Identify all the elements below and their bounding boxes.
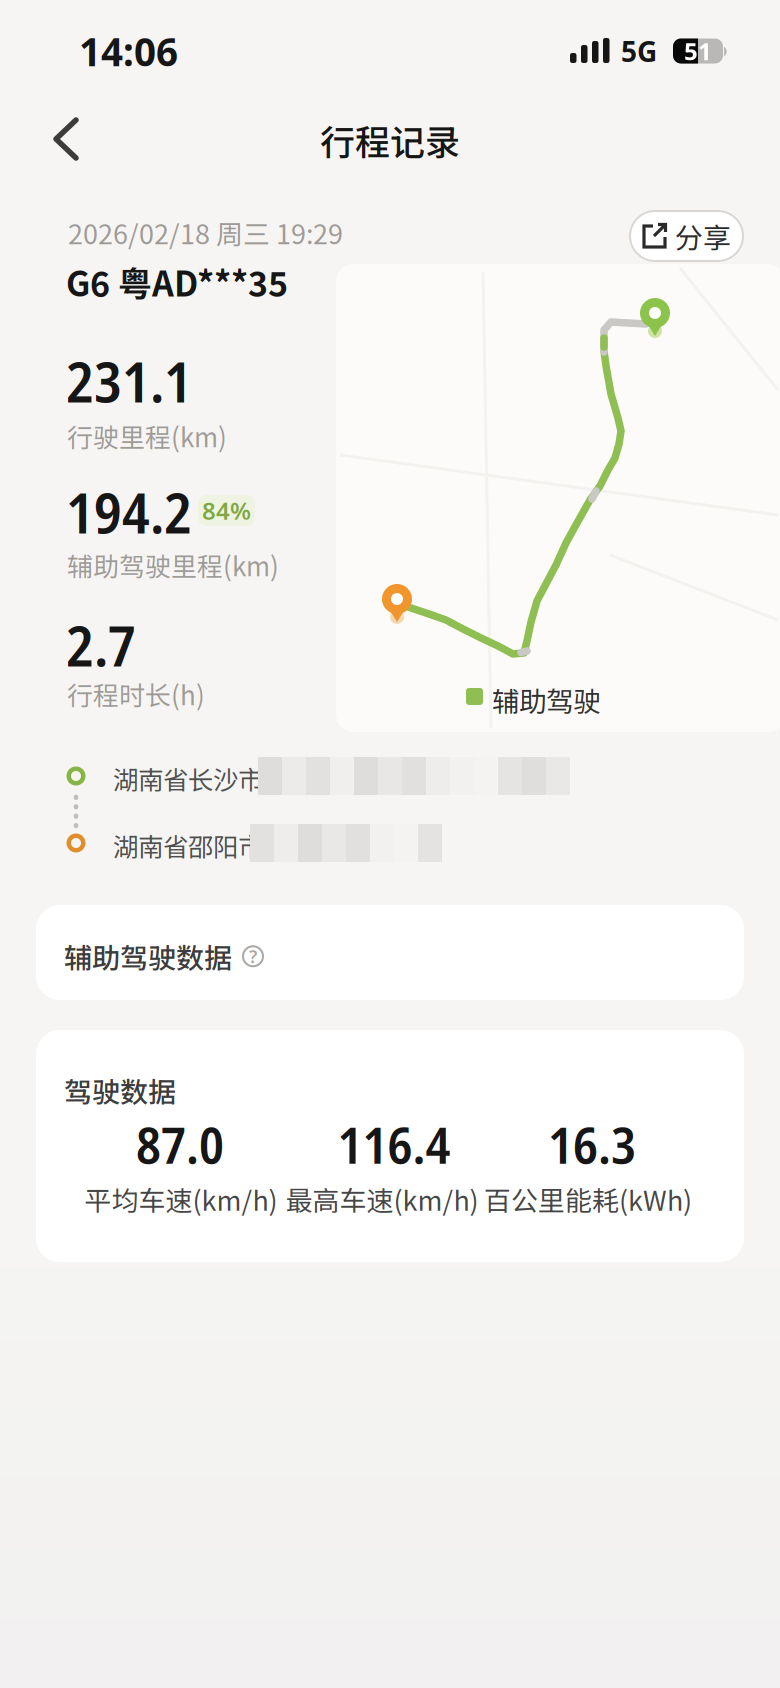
staticText: 14:06 [79,25,178,77]
staticText: 行程记录 [320,115,460,165]
staticText: 行驶里程(km) [67,417,227,455]
staticText: 最高车速(km/h) [285,1179,478,1218]
staticText: 辅助驾驶数据 [64,936,232,976]
staticText: 平均车速(km/h) [84,1179,277,1218]
staticText: 辅助驾驶 [492,680,600,720]
staticText: 5G [621,32,657,70]
staticText: 87.0 [136,1109,224,1179]
staticText: 84% [202,494,251,527]
button[interactable]: 辅助驾驶数据说明 [242,944,264,968]
button[interactable]: 分享 [629,210,744,262]
button[interactable]: Back [0,107,104,171]
staticText: 2026/02/18 周三 19:29 [68,213,343,252]
staticText: 194.2 [66,473,192,550]
staticText: 百公里能耗(kWh) [484,1179,692,1218]
staticText: 行程时长(h) [67,675,205,713]
staticText: 湖南省长沙市 [113,760,263,797]
staticText: 51 [684,35,712,67]
staticText: ? [249,944,257,968]
staticText: G6 粤AD***35 [66,257,288,306]
staticText: 驾驶数据 [64,1070,176,1110]
staticText: 116.4 [337,1109,450,1179]
staticText: 辅助驾驶里程(km) [67,546,279,584]
staticText: 分享 [675,216,731,256]
staticText: 2.7 [66,606,136,683]
staticText: 湖南省邵阳市 [113,827,263,864]
staticText: 16.3 [548,1109,636,1179]
staticText: 231.1 [66,342,192,419]
